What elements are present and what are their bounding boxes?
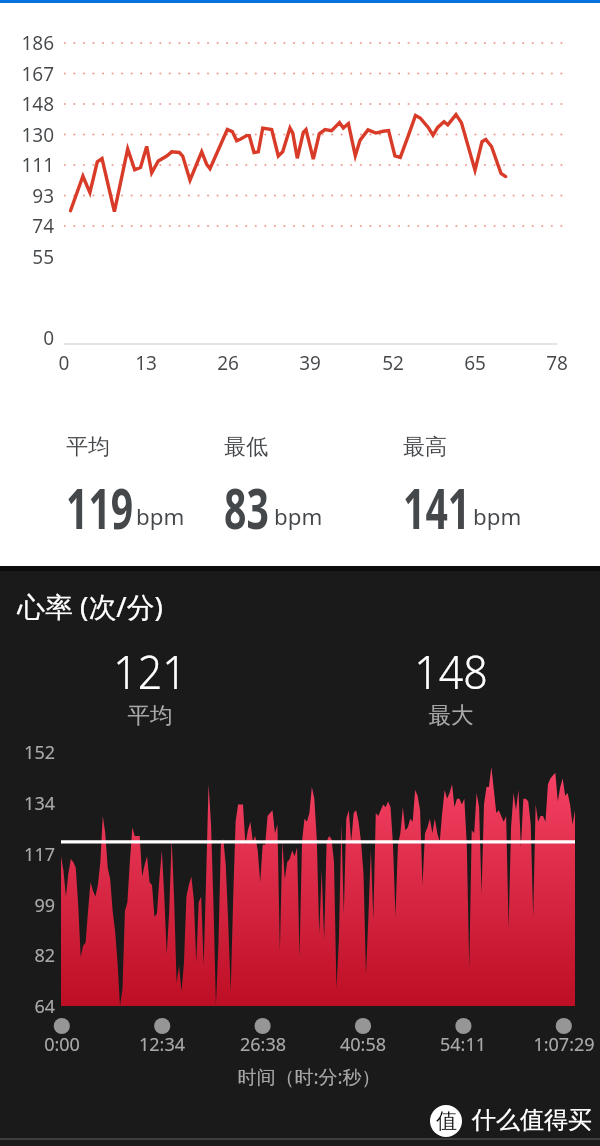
staticText: 152 bbox=[0, 740, 55, 765]
staticText: 平均 bbox=[66, 433, 110, 461]
staticText: bpm bbox=[274, 501, 323, 531]
staticText: 54:11 bbox=[313, 1032, 600, 1057]
staticText: 148 bbox=[310, 640, 592, 702]
staticText: 12:34 bbox=[12, 1032, 312, 1057]
staticText: 74 bbox=[0, 213, 54, 239]
staticText: 值 bbox=[436, 1108, 457, 1134]
staticText: 83 bbox=[224, 469, 269, 546]
button[interactable]: 什么值得买 bbox=[430, 1105, 592, 1137]
staticText: 26 bbox=[78, 350, 378, 376]
staticText: 26:38 bbox=[113, 1032, 413, 1057]
staticText: 99 bbox=[0, 893, 55, 918]
staticText: 65 bbox=[325, 350, 600, 376]
button[interactable]: 平均 bbox=[66, 433, 110, 461]
staticText: 121 bbox=[9, 640, 291, 702]
staticText: 130 bbox=[0, 122, 54, 148]
staticText: 平均 bbox=[0, 701, 300, 729]
staticText: 1:07:29 bbox=[414, 1032, 600, 1057]
staticText: 什么值得买 bbox=[472, 1105, 592, 1135]
staticText: 40:58 bbox=[213, 1032, 513, 1057]
staticText: 111 bbox=[0, 152, 54, 178]
staticText: 55 bbox=[0, 244, 54, 270]
staticText: 最低 bbox=[224, 433, 268, 461]
staticText: 167 bbox=[0, 61, 54, 87]
staticText: 时间（时:分:秒） bbox=[159, 1064, 459, 1090]
staticText: 39 bbox=[160, 350, 460, 376]
staticText: 117 bbox=[0, 842, 55, 867]
staticText: 82 bbox=[0, 943, 55, 968]
staticText: 0:00 bbox=[0, 1032, 212, 1057]
button[interactable]: 最高 bbox=[403, 433, 447, 461]
staticText: 0 bbox=[0, 325, 54, 351]
staticText: 13 bbox=[0, 350, 296, 376]
staticText: 186 bbox=[0, 30, 54, 56]
staticText: bpm bbox=[473, 501, 522, 531]
staticText: 93 bbox=[0, 183, 54, 209]
staticText: bpm bbox=[136, 501, 185, 531]
staticText: 52 bbox=[243, 350, 543, 376]
staticText: 141 bbox=[403, 469, 470, 546]
staticText: 119 bbox=[66, 469, 133, 546]
staticText: 最高 bbox=[403, 433, 447, 461]
staticText: 134 bbox=[0, 791, 55, 816]
staticText: 最大 bbox=[301, 701, 600, 729]
staticText: 0 bbox=[0, 350, 214, 376]
staticText: 78 bbox=[407, 350, 600, 376]
staticText: 64 bbox=[0, 994, 55, 1019]
button[interactable]: 最低 bbox=[224, 433, 268, 461]
staticText: 148 bbox=[0, 91, 54, 117]
staticText: 心率 (次/分) bbox=[17, 587, 163, 625]
